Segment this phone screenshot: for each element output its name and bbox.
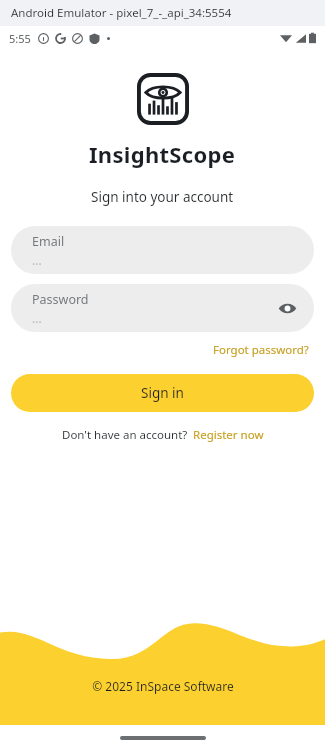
button[interactable]: Register now <box>193 427 264 443</box>
button[interactable]: Show password <box>272 293 302 323</box>
staticText: Sign in <box>141 384 184 402</box>
staticText: Sign into your account <box>91 188 234 206</box>
button[interactable]: Forgot password? <box>211 340 311 360</box>
staticText: 5:55 <box>9 31 31 46</box>
staticText: ... <box>32 310 42 326</box>
staticText: Android Emulator - pixel_7_-_api_34:5554 <box>11 5 232 21</box>
staticText: © 2025 InSpace Software <box>92 678 234 694</box>
staticText: Register now <box>193 427 264 443</box>
button[interactable]: Email <box>11 226 314 274</box>
staticText: InsightScope <box>89 139 236 169</box>
button[interactable]: Password <box>11 284 314 332</box>
button[interactable]: Sign in <box>11 374 314 412</box>
staticText: Password <box>32 291 89 308</box>
staticText: ... <box>32 252 42 268</box>
staticText: Email <box>32 233 65 250</box>
staticText: Don't have an account? <box>62 427 188 443</box>
staticText: Forgot password? <box>213 342 309 358</box>
